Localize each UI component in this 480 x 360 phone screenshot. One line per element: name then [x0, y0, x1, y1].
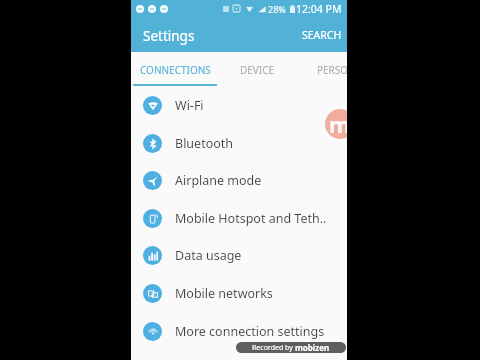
staticText: Data usage — [175, 247, 242, 264]
button[interactable]: PERSONAL — [301, 52, 347, 86]
staticText: 12:04 PM — [296, 2, 342, 16]
staticText: Bluetooth — [175, 135, 234, 152]
button[interactable]: Mobile networks — [131, 274, 347, 312]
button[interactable]: Bluetooth — [131, 124, 347, 162]
button[interactable]: DEVICE — [216, 52, 298, 86]
staticText: 28% — [268, 3, 286, 15]
staticText: Recorded by — [252, 343, 295, 353]
staticText: SEARCH — [302, 28, 342, 42]
button[interactable]: Mobizen recorder — [325, 109, 347, 139]
button[interactable]: Mobile Hotspot and Teth.. — [131, 199, 347, 237]
button[interactable]: More connection settings — [131, 312, 347, 350]
staticText: m — [329, 109, 347, 139]
staticText: PERSONAL — [317, 63, 347, 77]
staticText: Airplane mode — [175, 172, 262, 189]
staticText: CONNECTIONS — [140, 63, 211, 77]
button[interactable]: Wi-Fi — [131, 86, 347, 124]
staticText: Mobile networks — [175, 285, 273, 302]
staticText: Wi-Fi — [175, 97, 204, 114]
button[interactable]: SEARCH — [294, 20, 347, 50]
button[interactable]: Data usage — [131, 236, 347, 274]
button[interactable]: CONNECTIONS — [133, 52, 217, 86]
staticText: mobizen — [295, 342, 330, 353]
staticText: Settings — [143, 27, 195, 45]
button[interactable]: Airplane mode — [131, 161, 347, 199]
staticText: DEVICE — [240, 63, 275, 77]
staticText: Mobile Hotspot and Teth.. — [175, 210, 327, 227]
staticText: More connection settings — [175, 323, 325, 340]
